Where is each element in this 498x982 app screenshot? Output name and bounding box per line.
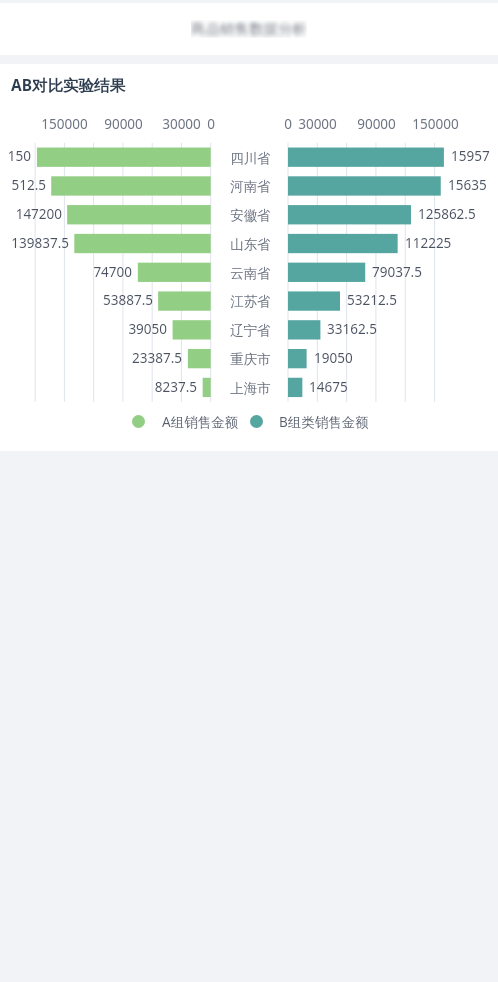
staticText: 33162.5	[327, 320, 377, 338]
staticText: 53887.5	[103, 291, 153, 309]
staticText: 23387.5	[132, 349, 182, 367]
staticText: 0	[207, 115, 215, 133]
staticText: AB对比实验结果	[11, 74, 126, 95]
staticText: 15635	[448, 176, 487, 194]
staticText: 112225	[405, 234, 452, 252]
staticText: 30000	[298, 115, 337, 133]
staticText: 河南省	[230, 178, 271, 195]
staticText: 14675	[309, 378, 348, 396]
staticText: 90000	[357, 115, 396, 133]
button[interactable]: 页面标题	[0, 3, 498, 55]
staticText: 15957	[451, 147, 490, 165]
staticText: 150	[7, 147, 31, 165]
staticText: A组销售金额	[162, 413, 239, 431]
staticText: 39050	[128, 320, 167, 338]
staticText: 53212.5	[347, 291, 397, 309]
staticText: 山东省	[230, 236, 271, 253]
staticText: 云南省	[230, 265, 271, 282]
staticText: 辽宁省	[230, 322, 271, 339]
staticText: 重庆市	[230, 351, 271, 368]
staticText: 上海市	[230, 380, 271, 397]
staticText: 30000	[162, 115, 201, 133]
staticText: 125862.5	[418, 205, 476, 223]
staticText: B组类销售金额	[279, 413, 369, 431]
staticText: 79037.5	[372, 263, 422, 281]
button[interactable]	[0, 64, 498, 451]
button[interactable]	[125, 409, 240, 435]
staticText: 147200	[15, 205, 62, 223]
staticText: 74700	[93, 263, 132, 281]
staticText: 四川省	[230, 150, 271, 167]
staticText: 8237.5	[154, 378, 197, 396]
staticText: 商品销售数据分析	[191, 20, 307, 38]
staticText: 512.5	[11, 176, 46, 194]
staticText: 19050	[314, 349, 353, 367]
staticText: 139837.5	[11, 234, 69, 252]
staticText: 江苏省	[230, 293, 271, 310]
staticText: 150000	[41, 115, 88, 133]
staticText: 150000	[412, 115, 459, 133]
staticText: 90000	[104, 115, 143, 133]
staticText: 0	[284, 115, 292, 133]
staticText: 安徽省	[230, 207, 271, 224]
